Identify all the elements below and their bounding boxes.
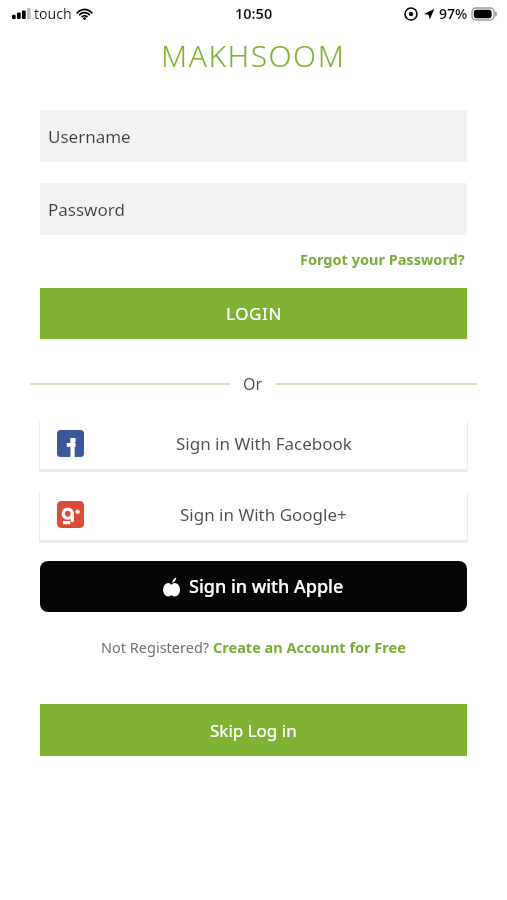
button[interactable]: Password — [40, 183, 467, 235]
button[interactable]: Username — [40, 110, 467, 162]
staticText: MAKHSOOM — [161, 35, 346, 76]
other: Facebook — [57, 430, 84, 457]
button[interactable]: Not Registered? — [97, 634, 410, 660]
button[interactable]: Apple — [40, 561, 467, 612]
button[interactable]: Skip Log in — [40, 704, 467, 756]
button[interactable]: LOGIN — [40, 288, 467, 339]
staticText: Sign in with Apple — [189, 574, 344, 599]
other: Google Plus — [57, 501, 84, 528]
staticText: 97% — [439, 4, 468, 23]
staticText: Sign in With Google+ — [180, 503, 347, 526]
staticText: LOGIN — [226, 302, 282, 325]
staticText: Forgot your Password? — [300, 249, 465, 269]
staticText: Password — [48, 198, 125, 221]
button[interactable]: Facebook — [40, 418, 467, 469]
staticText: Or — [243, 373, 263, 395]
staticText: 10:50 — [235, 3, 273, 23]
button[interactable]: Google Plus — [40, 489, 467, 540]
staticText: touch — [34, 4, 72, 23]
staticText: Username — [48, 125, 131, 148]
other: Apple — [163, 577, 180, 597]
staticText: Not Registered? — [101, 637, 213, 657]
staticText: Sign in With Facebook — [176, 432, 352, 455]
staticText: Skip Log in — [210, 719, 297, 742]
staticText: Create an Account for Free — [213, 637, 406, 657]
button[interactable]: Forgot your Password? — [298, 246, 467, 272]
